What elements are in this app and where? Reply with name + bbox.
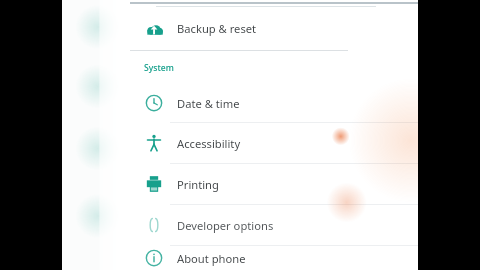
staticText: System <box>144 62 174 74</box>
staticText: Developer options <box>177 218 274 233</box>
staticText: Accessibility <box>177 136 241 151</box>
staticText: Printing <box>177 177 219 192</box>
staticText: About phone <box>177 251 246 266</box>
staticText: Date & time <box>177 96 240 111</box>
staticText: Backup & reset <box>177 21 257 36</box>
button[interactable]: Printing <box>130 164 418 204</box>
button[interactable]: Accessibility <box>130 123 418 163</box>
button[interactable]: About phone <box>130 246 418 270</box>
button[interactable]: Date & time <box>130 84 418 122</box>
button[interactable]: Developer options <box>130 205 418 245</box>
button[interactable]: Backup & reset <box>130 7 418 50</box>
